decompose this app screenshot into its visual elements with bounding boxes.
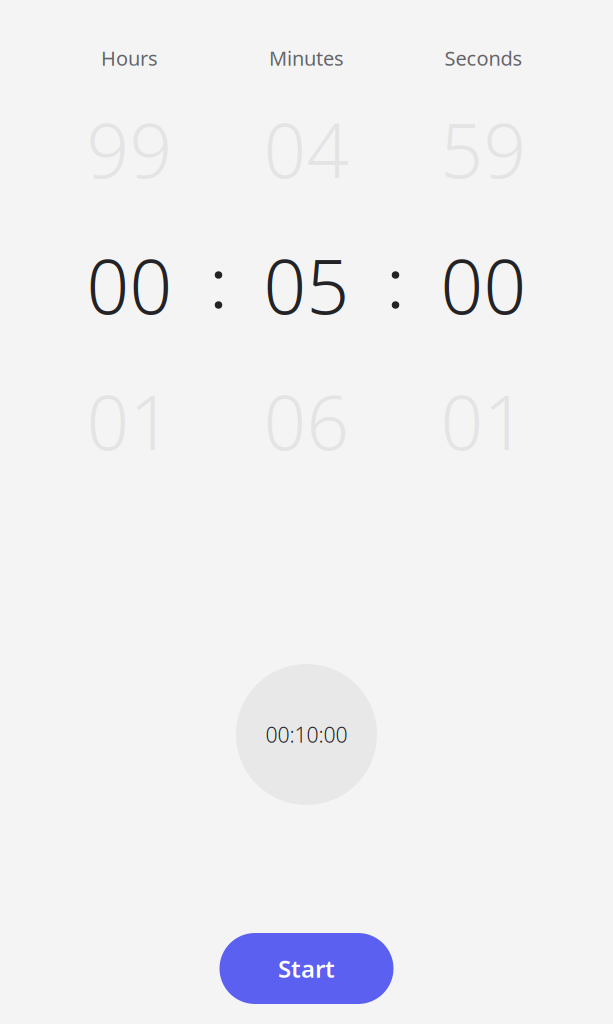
staticText: 06 (263, 371, 349, 471)
staticText: 04 (263, 99, 349, 199)
button[interactable]: Seconds: 00 (423, 81, 543, 489)
button[interactable]: Start (219, 933, 393, 1004)
staticText: Seconds (444, 45, 522, 71)
staticText: 99 (86, 99, 172, 199)
staticText: 05 (263, 235, 349, 335)
staticText: Start (278, 953, 335, 984)
button[interactable]: 00:10:00 (236, 664, 377, 805)
button[interactable]: Hours: 00 (69, 81, 189, 489)
staticText: 00 (440, 235, 526, 335)
staticText: 00 (86, 235, 172, 335)
staticText: Minutes (269, 45, 344, 71)
staticText: 59 (440, 99, 526, 199)
staticText: 01 (86, 371, 172, 471)
staticText: Hours (101, 45, 158, 71)
button[interactable]: Minutes: 05 (246, 81, 366, 489)
staticText: 01 (440, 371, 526, 471)
staticText: 00:10:00 (265, 720, 347, 749)
